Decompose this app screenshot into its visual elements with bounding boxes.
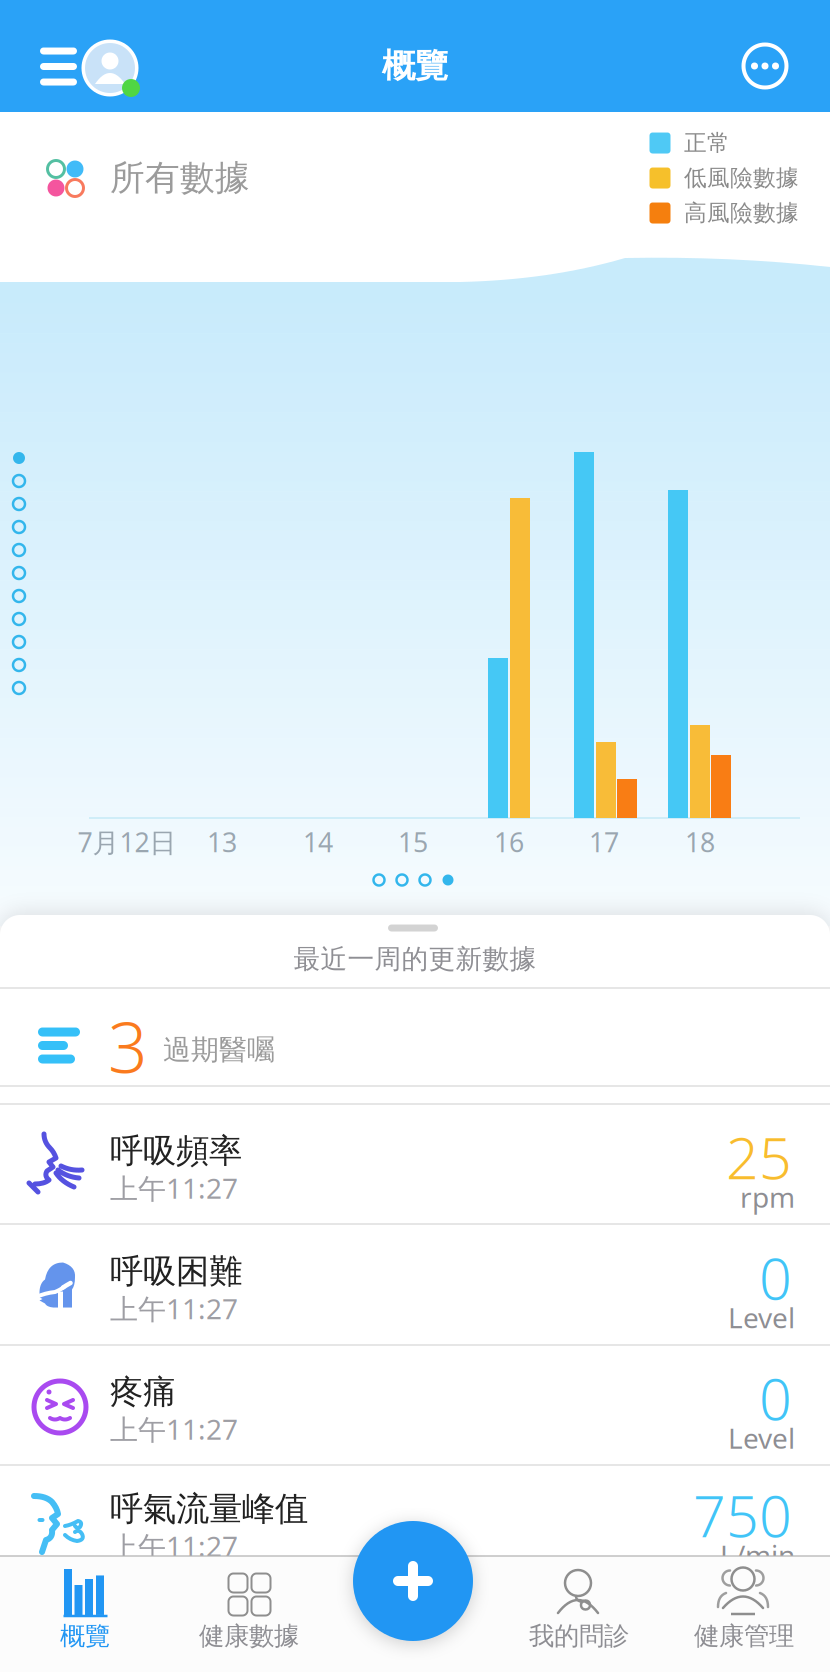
button[interactable] <box>0 0 160 112</box>
button[interactable]: 呼吸困難 <box>0 1224 830 1344</box>
staticText: 15 <box>398 824 428 860</box>
staticText: 正常 <box>684 129 730 157</box>
staticText: 7月12日 <box>77 824 176 860</box>
staticText: 最近一周的更新數據 <box>293 943 536 975</box>
staticText: 呼吸困難 <box>110 1251 242 1292</box>
button[interactable]: 呼吸頻率 <box>0 1104 830 1224</box>
button[interactable]: 健康管理 <box>660 1556 826 1672</box>
staticText: 16 <box>494 824 524 860</box>
staticText: 750 <box>693 1477 792 1553</box>
staticText: 概覽 <box>60 1620 110 1651</box>
staticText: 疼痛 <box>110 1371 176 1412</box>
staticText: 健康數據 <box>199 1620 299 1651</box>
staticText: Level <box>728 1299 795 1336</box>
button[interactable]: 呼氣流量峰值 <box>0 1462 830 1582</box>
staticText: 上午11:27 <box>110 1169 238 1207</box>
staticText: 概覽 <box>382 45 448 86</box>
staticText: 上午11:27 <box>110 1527 238 1565</box>
staticText: 18 <box>685 824 715 860</box>
staticText: 25 <box>726 1119 792 1195</box>
button[interactable]: 3 <box>0 988 830 1086</box>
button[interactable] <box>733 34 797 98</box>
staticText: 上午11:27 <box>110 1290 238 1327</box>
button[interactable]: 健康數據 <box>165 1556 331 1672</box>
button[interactable]: 我的問診 <box>495 1556 661 1672</box>
staticText: Level <box>728 1419 795 1457</box>
staticText: L/min <box>720 1536 795 1574</box>
staticText: 所有數據 <box>110 157 250 199</box>
staticText: 低風險數據 <box>684 164 799 192</box>
button[interactable] <box>353 1521 473 1641</box>
staticText: 呼氣流量峰值 <box>110 1488 308 1529</box>
staticText: 高風險數據 <box>684 199 799 227</box>
staticText: 14 <box>303 824 333 860</box>
staticText: 上午11:27 <box>110 1410 238 1448</box>
staticText: 我的問診 <box>529 1620 629 1651</box>
staticText: 3 <box>108 1000 148 1092</box>
button[interactable]: 概覽 <box>0 1556 166 1672</box>
staticText: 0 <box>759 1360 792 1436</box>
staticText: 17 <box>589 824 619 860</box>
staticText: 0 <box>759 1239 792 1315</box>
staticText: 健康管理 <box>694 1620 794 1651</box>
staticText: 13 <box>207 824 237 860</box>
staticText: rpm <box>740 1178 795 1216</box>
button[interactable]: 疼痛 <box>0 1345 830 1465</box>
staticText: 呼吸頻率 <box>110 1130 242 1171</box>
staticText: 過期醫囑 <box>163 1033 275 1067</box>
